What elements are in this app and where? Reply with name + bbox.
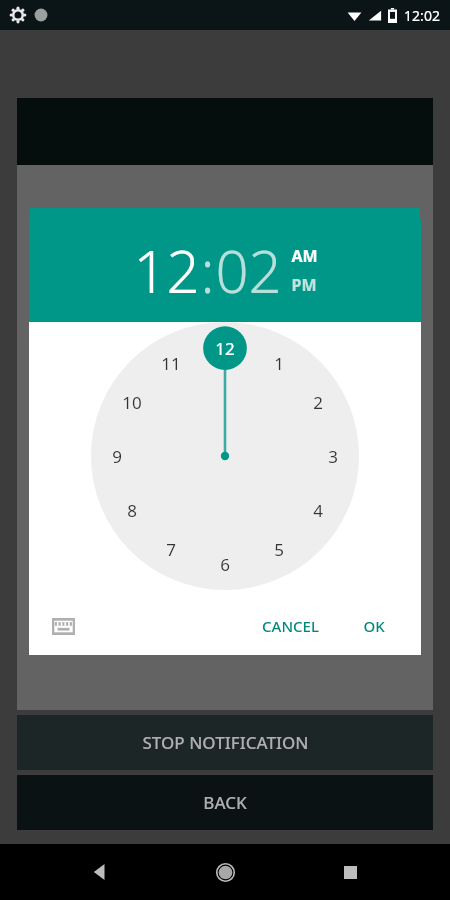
- staticText: OK: [363, 616, 385, 636]
- button[interactable]: 12: [133, 231, 200, 310]
- staticText: CANCEL: [262, 616, 319, 636]
- staticText: 1: [274, 352, 284, 375]
- staticText: 10: [122, 391, 142, 414]
- staticText: 12: [215, 337, 235, 360]
- staticText: 7: [166, 538, 176, 561]
- staticText: 5: [274, 538, 284, 561]
- button[interactable]: OK: [351, 608, 397, 644]
- staticText: 2: [313, 391, 323, 414]
- staticText: 9: [112, 445, 122, 468]
- staticText: STOP NOTIFICATION: [142, 731, 309, 754]
- staticText: 11: [161, 352, 181, 375]
- button[interactable]: Switch to text input: [43, 606, 83, 646]
- button[interactable]: AM: [291, 245, 318, 267]
- staticText: 3: [328, 445, 338, 468]
- staticText: :: [200, 231, 215, 310]
- button[interactable]: STOP NOTIFICATION: [17, 715, 433, 770]
- staticText: 12: [133, 231, 200, 310]
- button[interactable]: Home: [201, 848, 249, 896]
- staticText: 6: [220, 553, 230, 576]
- button[interactable]: BACK: [17, 775, 433, 830]
- staticText: BACK: [203, 791, 247, 814]
- staticText: 02: [215, 231, 282, 310]
- button[interactable]: CANCEL: [250, 608, 331, 644]
- staticText: PM: [291, 274, 317, 296]
- staticText: 12:02: [404, 6, 440, 25]
- staticText: AM: [291, 245, 318, 267]
- button[interactable]: 02: [215, 231, 282, 310]
- staticText: 4: [313, 499, 323, 522]
- button[interactable]: Recent apps: [326, 848, 374, 896]
- button[interactable]: Back: [77, 848, 125, 896]
- button[interactable]: PM: [291, 274, 317, 296]
- staticText: 8: [127, 499, 137, 522]
